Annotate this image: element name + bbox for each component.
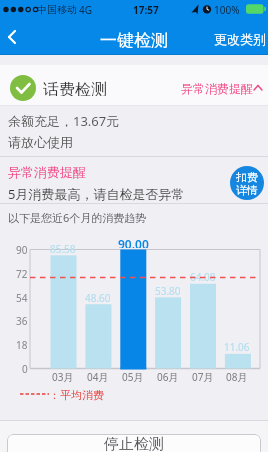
staticText: 90.00: [118, 236, 149, 248]
staticText: 17:57: [133, 3, 159, 17]
staticText: 异常消费提醒: [8, 164, 86, 179]
staticText: 07月: [192, 370, 214, 383]
staticText: 中国移动: [37, 3, 77, 16]
staticText: 06月: [157, 370, 179, 383]
staticText: 停止检测: [104, 435, 164, 452]
staticText: 余额充足，13.67元: [8, 112, 120, 127]
staticText: 48.60: [85, 291, 111, 303]
staticText: 64.08: [190, 270, 216, 282]
staticText: 03月: [52, 370, 74, 383]
staticText: 85.58: [50, 242, 76, 254]
staticText: 以下是您近6个月的消费趋势: [8, 210, 147, 224]
staticText: 扣费 详情: [236, 170, 258, 197]
staticText: 100%: [214, 3, 240, 17]
staticText: 话费检测: [43, 80, 107, 96]
staticText: 4G: [79, 3, 92, 17]
button[interactable]: [179, 78, 268, 98]
button[interactable]: 扣费 详情: [230, 166, 264, 200]
button[interactable]: [0, 22, 30, 52]
staticText: 05月: [122, 370, 144, 383]
staticText: 36: [16, 314, 28, 326]
staticText: 18: [16, 338, 28, 350]
staticText: 08月: [226, 370, 248, 383]
staticText: 更改类别: [214, 31, 266, 47]
staticText: 04月: [87, 370, 109, 383]
staticText: 5月消费最高，请自检是否异常: [8, 185, 185, 201]
staticText: 11.06: [224, 340, 250, 352]
staticText: 异常消费提醒: [181, 81, 253, 95]
staticText: 90: [16, 243, 28, 255]
button[interactable]: 更改类别: [212, 31, 268, 47]
staticText: 0: [22, 362, 28, 374]
button[interactable]: 停止检测: [7, 434, 261, 452]
staticText: 72: [16, 267, 28, 279]
staticText: 53.80: [155, 284, 181, 296]
staticText: 54: [16, 291, 28, 303]
staticText: ：平均消费: [49, 388, 104, 401]
staticText: 请放心使用: [8, 134, 73, 149]
staticText: 一键检测: [100, 30, 168, 48]
